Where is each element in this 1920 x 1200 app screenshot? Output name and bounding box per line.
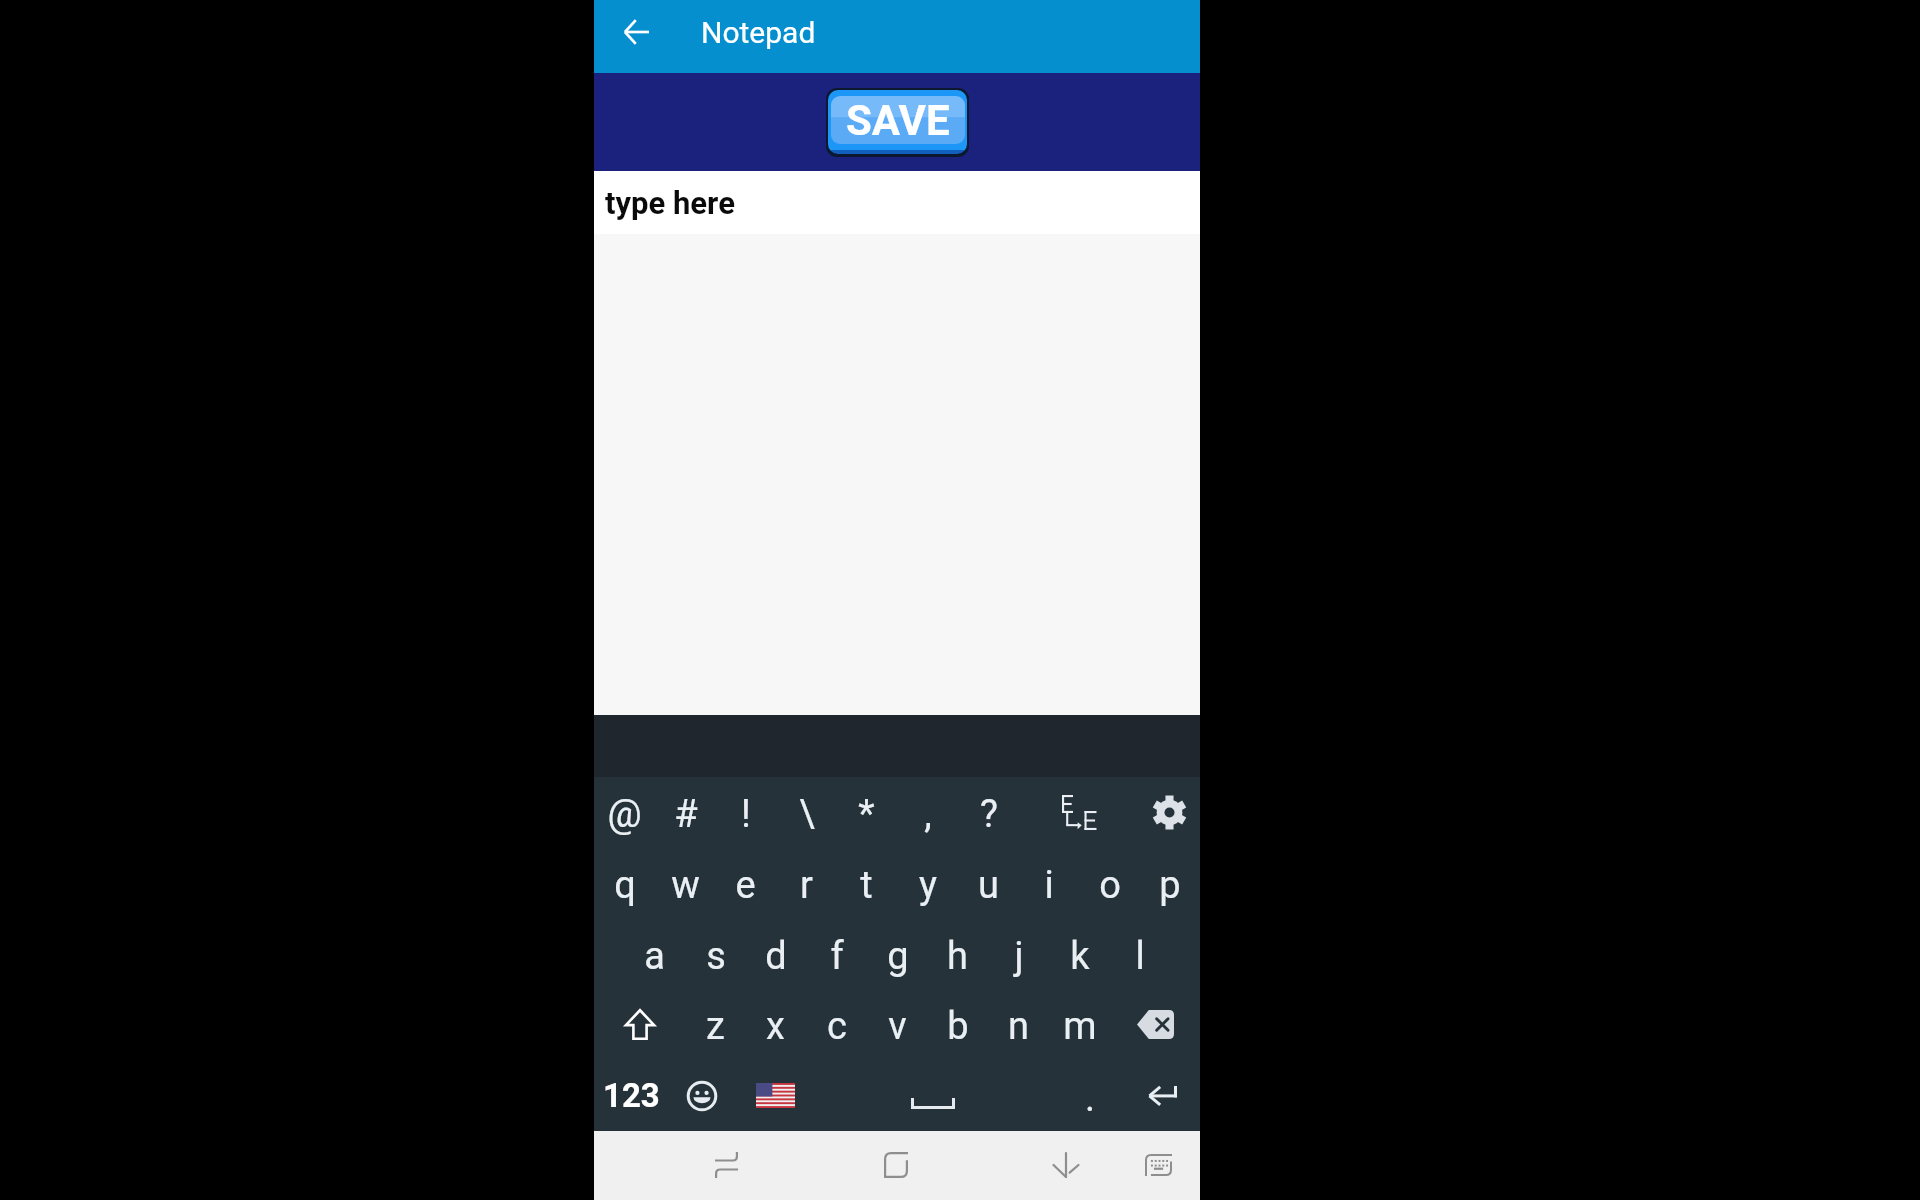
- button[interactable]: Space: [805, 1060, 1060, 1131]
- button[interactable]: \: [776, 777, 837, 848]
- button[interactable]: t: [836, 848, 897, 919]
- button[interactable]: s: [685, 919, 746, 990]
- staticText: g: [887, 934, 909, 979]
- button[interactable]: Home: [854, 1130, 938, 1199]
- button[interactable]: g: [867, 919, 928, 990]
- button[interactable]: Emoji: [671, 1060, 732, 1131]
- staticText: b: [947, 1004, 969, 1049]
- button[interactable]: x: [745, 989, 806, 1060]
- button[interactable]: ?: [958, 777, 1019, 848]
- button[interactable]: i: [1018, 848, 1079, 919]
- staticText: n: [1008, 1004, 1029, 1049]
- button[interactable]: Enter: [1126, 1060, 1199, 1131]
- staticText: Notepad: [701, 15, 816, 50]
- staticText: w: [671, 863, 700, 908]
- button[interactable]: SAVE: [826, 88, 969, 157]
- button[interactable]: Switch language: [1037, 777, 1122, 848]
- button[interactable]: #: [655, 777, 716, 848]
- staticText: 123: [603, 1076, 660, 1115]
- button[interactable]: o: [1079, 848, 1140, 919]
- staticText: a: [644, 934, 665, 979]
- staticText: d: [765, 934, 787, 979]
- staticText: m: [1063, 1004, 1097, 1049]
- button[interactable]: Back: [684, 1130, 768, 1199]
- staticText: @: [607, 792, 642, 837]
- button[interactable]: Shift: [594, 989, 685, 1060]
- button[interactable]: z: [685, 989, 746, 1060]
- staticText: h: [947, 934, 968, 979]
- staticText: .: [1085, 1076, 1096, 1121]
- button[interactable]: d: [745, 919, 806, 990]
- button[interactable]: y: [897, 848, 958, 919]
- button[interactable]: m: [1049, 989, 1110, 1060]
- button[interactable]: !: [715, 777, 776, 848]
- staticText: SAVE: [846, 96, 950, 144]
- staticText: u: [978, 863, 999, 908]
- staticText: f: [830, 934, 844, 979]
- button[interactable]: Back: [599, 0, 661, 62]
- button[interactable]: u: [958, 848, 1019, 919]
- staticText: x: [766, 1004, 785, 1049]
- staticText: r: [800, 863, 813, 908]
- staticText: e: [735, 863, 756, 908]
- staticText: k: [1070, 934, 1090, 979]
- button[interactable]: Hide keyboard: [1024, 1130, 1108, 1199]
- button[interactable]: l: [1109, 919, 1170, 990]
- staticText: c: [827, 1004, 847, 1049]
- staticText: !: [741, 792, 751, 837]
- button[interactable]: *: [836, 777, 897, 848]
- staticText: j: [1014, 934, 1024, 979]
- button[interactable]: p: [1139, 848, 1200, 919]
- button[interactable]: j: [988, 919, 1049, 990]
- staticText: p: [1159, 863, 1181, 908]
- staticText: \: [799, 792, 815, 837]
- button[interactable]: type here: [594, 171, 1200, 234]
- button[interactable]: h: [927, 919, 988, 990]
- button[interactable]: Period: [1060, 1060, 1121, 1131]
- button[interactable]: Numbers and symbols: [595, 1060, 668, 1131]
- button[interactable]: @: [594, 777, 655, 848]
- staticText: l: [1135, 934, 1145, 979]
- button[interactable]: e: [715, 848, 776, 919]
- button[interactable]: Backspace: [1110, 989, 1201, 1060]
- staticText: y: [919, 863, 937, 908]
- staticText: type here: [605, 185, 735, 221]
- button[interactable]: a: [624, 919, 685, 990]
- button[interactable]: w: [655, 848, 716, 919]
- button[interactable]: Settings: [1139, 777, 1200, 848]
- button[interactable]: v: [867, 989, 928, 1060]
- staticText: s: [706, 934, 726, 979]
- staticText: o: [1099, 863, 1121, 908]
- staticText: t: [860, 863, 873, 908]
- button[interactable]: Switch keyboard: [1116, 1130, 1200, 1199]
- button[interactable]: ,: [897, 777, 958, 848]
- button[interactable]: Change keyboard language: [745, 1060, 806, 1131]
- button[interactable]: q: [594, 848, 655, 919]
- button[interactable]: c: [806, 989, 867, 1060]
- button[interactable]: f: [806, 919, 867, 990]
- button[interactable]: r: [776, 848, 837, 919]
- staticText: i: [1044, 863, 1054, 908]
- button[interactable]: n: [988, 989, 1049, 1060]
- staticText: ?: [980, 792, 998, 837]
- button[interactable]: b: [927, 989, 988, 1060]
- staticText: q: [614, 863, 636, 908]
- staticText: #: [674, 792, 698, 837]
- staticText: *: [858, 792, 875, 837]
- staticText: v: [888, 1004, 907, 1049]
- button[interactable]: k: [1049, 919, 1110, 990]
- staticText: ,: [924, 792, 932, 837]
- staticText: z: [706, 1004, 725, 1049]
